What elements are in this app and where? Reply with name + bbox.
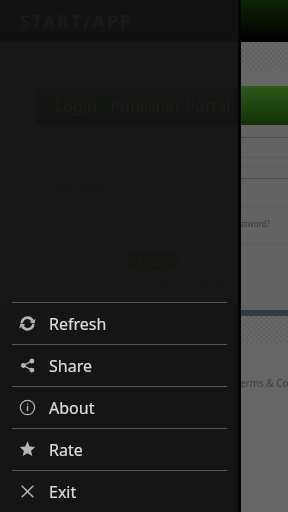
button[interactable]: Refresh: [0, 303, 238, 344]
staticText: Share: [49, 355, 92, 377]
staticText: Terms & Conditions: [235, 376, 288, 390]
button[interactable]: Share: [0, 345, 238, 386]
button[interactable]: Exit: [0, 471, 238, 512]
staticText: Refresh: [49, 313, 107, 335]
staticText: Remember Me | Forgot Password?: [135, 218, 270, 229]
staticText: Rate: [49, 439, 83, 461]
staticText: Exit: [49, 481, 77, 503]
button[interactable]: Rate: [0, 429, 238, 470]
staticText: About: [49, 397, 95, 419]
button[interactable]: About: [0, 387, 238, 428]
